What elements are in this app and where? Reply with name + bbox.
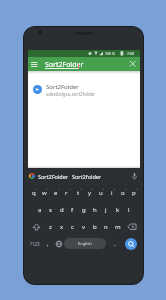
staticText: t bbox=[77, 189, 80, 197]
button[interactable]: b bbox=[89, 218, 100, 235]
staticText: a bbox=[38, 206, 42, 214]
staticText: p bbox=[132, 189, 136, 197]
button[interactable]: m bbox=[112, 218, 123, 235]
staticText: n bbox=[104, 223, 108, 231]
button[interactable]: k bbox=[112, 201, 123, 218]
button[interactable]: s bbox=[45, 201, 56, 218]
staticText: g bbox=[82, 206, 86, 214]
button[interactable]: j bbox=[100, 201, 111, 218]
button[interactable]: a bbox=[34, 201, 45, 218]
staticText: s bbox=[49, 206, 52, 214]
button[interactable]: , bbox=[42, 235, 53, 252]
button[interactable]: z bbox=[45, 218, 56, 235]
button[interactable]: v bbox=[78, 218, 89, 235]
button[interactable]: u bbox=[95, 184, 106, 201]
staticText: u bbox=[99, 189, 103, 197]
button[interactable]: w bbox=[39, 184, 50, 201]
button[interactable]: ?123 bbox=[28, 235, 42, 252]
staticText: b bbox=[93, 223, 97, 231]
staticText: k bbox=[116, 206, 120, 214]
staticText: 7:00 bbox=[127, 51, 134, 56]
button[interactable]: y bbox=[84, 184, 95, 201]
button[interactable]: . bbox=[108, 235, 121, 252]
staticText: z bbox=[49, 223, 52, 231]
button[interactable]: f bbox=[67, 201, 78, 218]
button[interactable]: t bbox=[73, 184, 84, 201]
button[interactable]: English bbox=[64, 238, 106, 249]
button[interactable] bbox=[53, 235, 64, 252]
button[interactable]: Sort2Folder bbox=[28, 78, 140, 101]
button[interactable] bbox=[125, 238, 137, 250]
staticText: y bbox=[88, 189, 92, 197]
staticText: h bbox=[93, 206, 97, 214]
button[interactable]: c bbox=[67, 218, 78, 235]
staticText: e bbox=[54, 189, 58, 197]
staticText: , bbox=[47, 240, 49, 248]
staticText: i bbox=[111, 189, 113, 197]
button[interactable]: d bbox=[56, 201, 67, 218]
button[interactable] bbox=[28, 218, 44, 235]
staticText: x bbox=[60, 223, 64, 231]
staticText: Sort2Folder bbox=[46, 83, 79, 91]
staticText: o bbox=[121, 189, 125, 197]
staticText: . bbox=[114, 240, 116, 248]
staticText: f bbox=[71, 206, 74, 214]
button[interactable]: Sort2Folder bbox=[45, 60, 84, 70]
staticText: j bbox=[105, 206, 107, 214]
button[interactable]: l bbox=[123, 201, 134, 218]
button[interactable] bbox=[132, 173, 137, 180]
staticText: q bbox=[32, 189, 36, 197]
button[interactable]: r bbox=[61, 184, 72, 201]
button[interactable] bbox=[123, 218, 140, 235]
staticText: c bbox=[71, 223, 74, 231]
button[interactable] bbox=[128, 59, 138, 69]
staticText: sdestbdgsu.sort2folder bbox=[46, 91, 96, 97]
staticText: English bbox=[78, 241, 92, 246]
staticText: w bbox=[42, 189, 47, 197]
button[interactable]: h bbox=[89, 201, 100, 218]
button[interactable]: Sort2folder bbox=[72, 173, 102, 180]
button[interactable]: e bbox=[50, 184, 61, 201]
button[interactable]: g bbox=[78, 201, 89, 218]
staticText: l bbox=[128, 206, 130, 214]
button[interactable] bbox=[29, 59, 39, 69]
button[interactable]: x bbox=[56, 218, 67, 235]
staticText: r bbox=[65, 189, 68, 197]
button[interactable]: p bbox=[128, 184, 139, 201]
staticText: ?123 bbox=[30, 241, 40, 247]
button[interactable]: n bbox=[100, 218, 111, 235]
button[interactable]: i bbox=[106, 184, 117, 201]
button[interactable]: Sort2Folder bbox=[38, 173, 69, 180]
staticText: v bbox=[82, 223, 86, 231]
button[interactable]: o bbox=[117, 184, 128, 201]
staticText: d bbox=[60, 206, 64, 214]
staticText: m bbox=[115, 223, 121, 231]
staticText: 100 % bbox=[105, 51, 115, 56]
button[interactable]: q bbox=[28, 184, 39, 201]
